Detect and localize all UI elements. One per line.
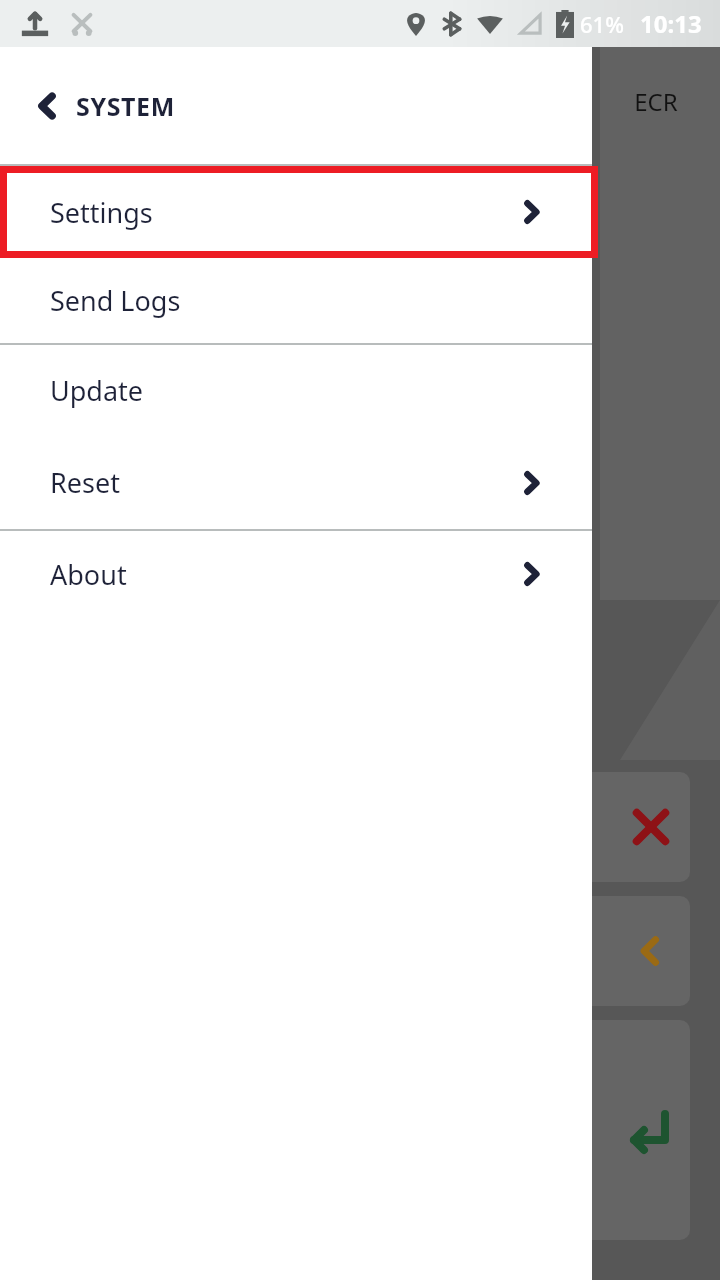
button[interactable]: Send Logs (0, 258, 592, 343)
staticText: About (50, 556, 127, 593)
staticText: Send Logs (50, 282, 181, 319)
button[interactable]: Reset (0, 436, 592, 529)
button[interactable]: Keypad button (556, 896, 690, 1006)
staticText: 10:13 (640, 7, 702, 40)
staticText: Update (50, 372, 144, 409)
button[interactable]: Back (16, 74, 80, 138)
staticText: Settings (50, 194, 153, 231)
staticText: Reset (50, 464, 120, 501)
staticText: ECR (634, 85, 678, 118)
button[interactable]: Keypad button (556, 1020, 690, 1240)
staticText: 61% (580, 9, 624, 39)
button[interactable]: Keypad button (556, 772, 690, 882)
button[interactable]: Settings (0, 166, 592, 258)
staticText: SYSTEM (76, 89, 175, 123)
button[interactable]: About (0, 531, 592, 617)
button[interactable]: Update (0, 345, 592, 436)
